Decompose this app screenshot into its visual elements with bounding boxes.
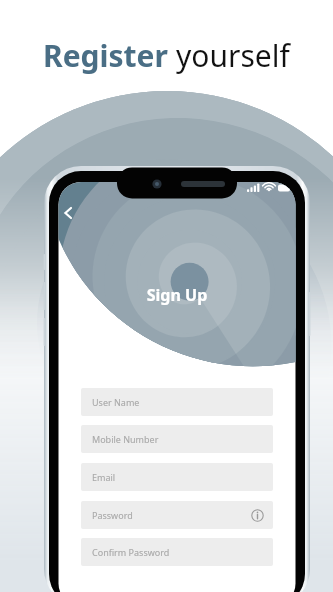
staticText: Mobile Number [92, 433, 264, 445]
button[interactable]: Back [57, 202, 79, 224]
button[interactable]: Confirm Password [81, 538, 273, 566]
staticText: User Name [92, 396, 264, 408]
staticText: Confirm Password [92, 546, 264, 558]
button[interactable]: User Name [81, 388, 273, 416]
staticText: Password [92, 509, 251, 521]
button[interactable]: Mobile Number [81, 425, 273, 453]
staticText: yourself [176, 35, 290, 76]
staticText: Sign Up [59, 284, 295, 306]
button[interactable]: Email [81, 463, 273, 491]
button[interactable]: Password [81, 501, 273, 529]
staticText: Register [43, 35, 176, 76]
staticText: Email [92, 471, 264, 483]
other: Password info [251, 509, 264, 522]
